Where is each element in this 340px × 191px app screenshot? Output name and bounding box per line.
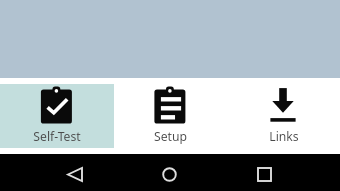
- staticText: Self-Test: [33, 128, 81, 145]
- staticText: Links: [269, 128, 299, 145]
- staticText: Setup: [154, 128, 187, 145]
- button[interactable]: Links: [227, 84, 340, 148]
- button[interactable]: Back: [43, 158, 106, 191]
- button[interactable]: Recent apps: [233, 158, 296, 191]
- button[interactable]: Home: [138, 158, 201, 191]
- button[interactable]: Self-Test: [0, 84, 114, 148]
- button[interactable]: Setup: [114, 84, 227, 148]
